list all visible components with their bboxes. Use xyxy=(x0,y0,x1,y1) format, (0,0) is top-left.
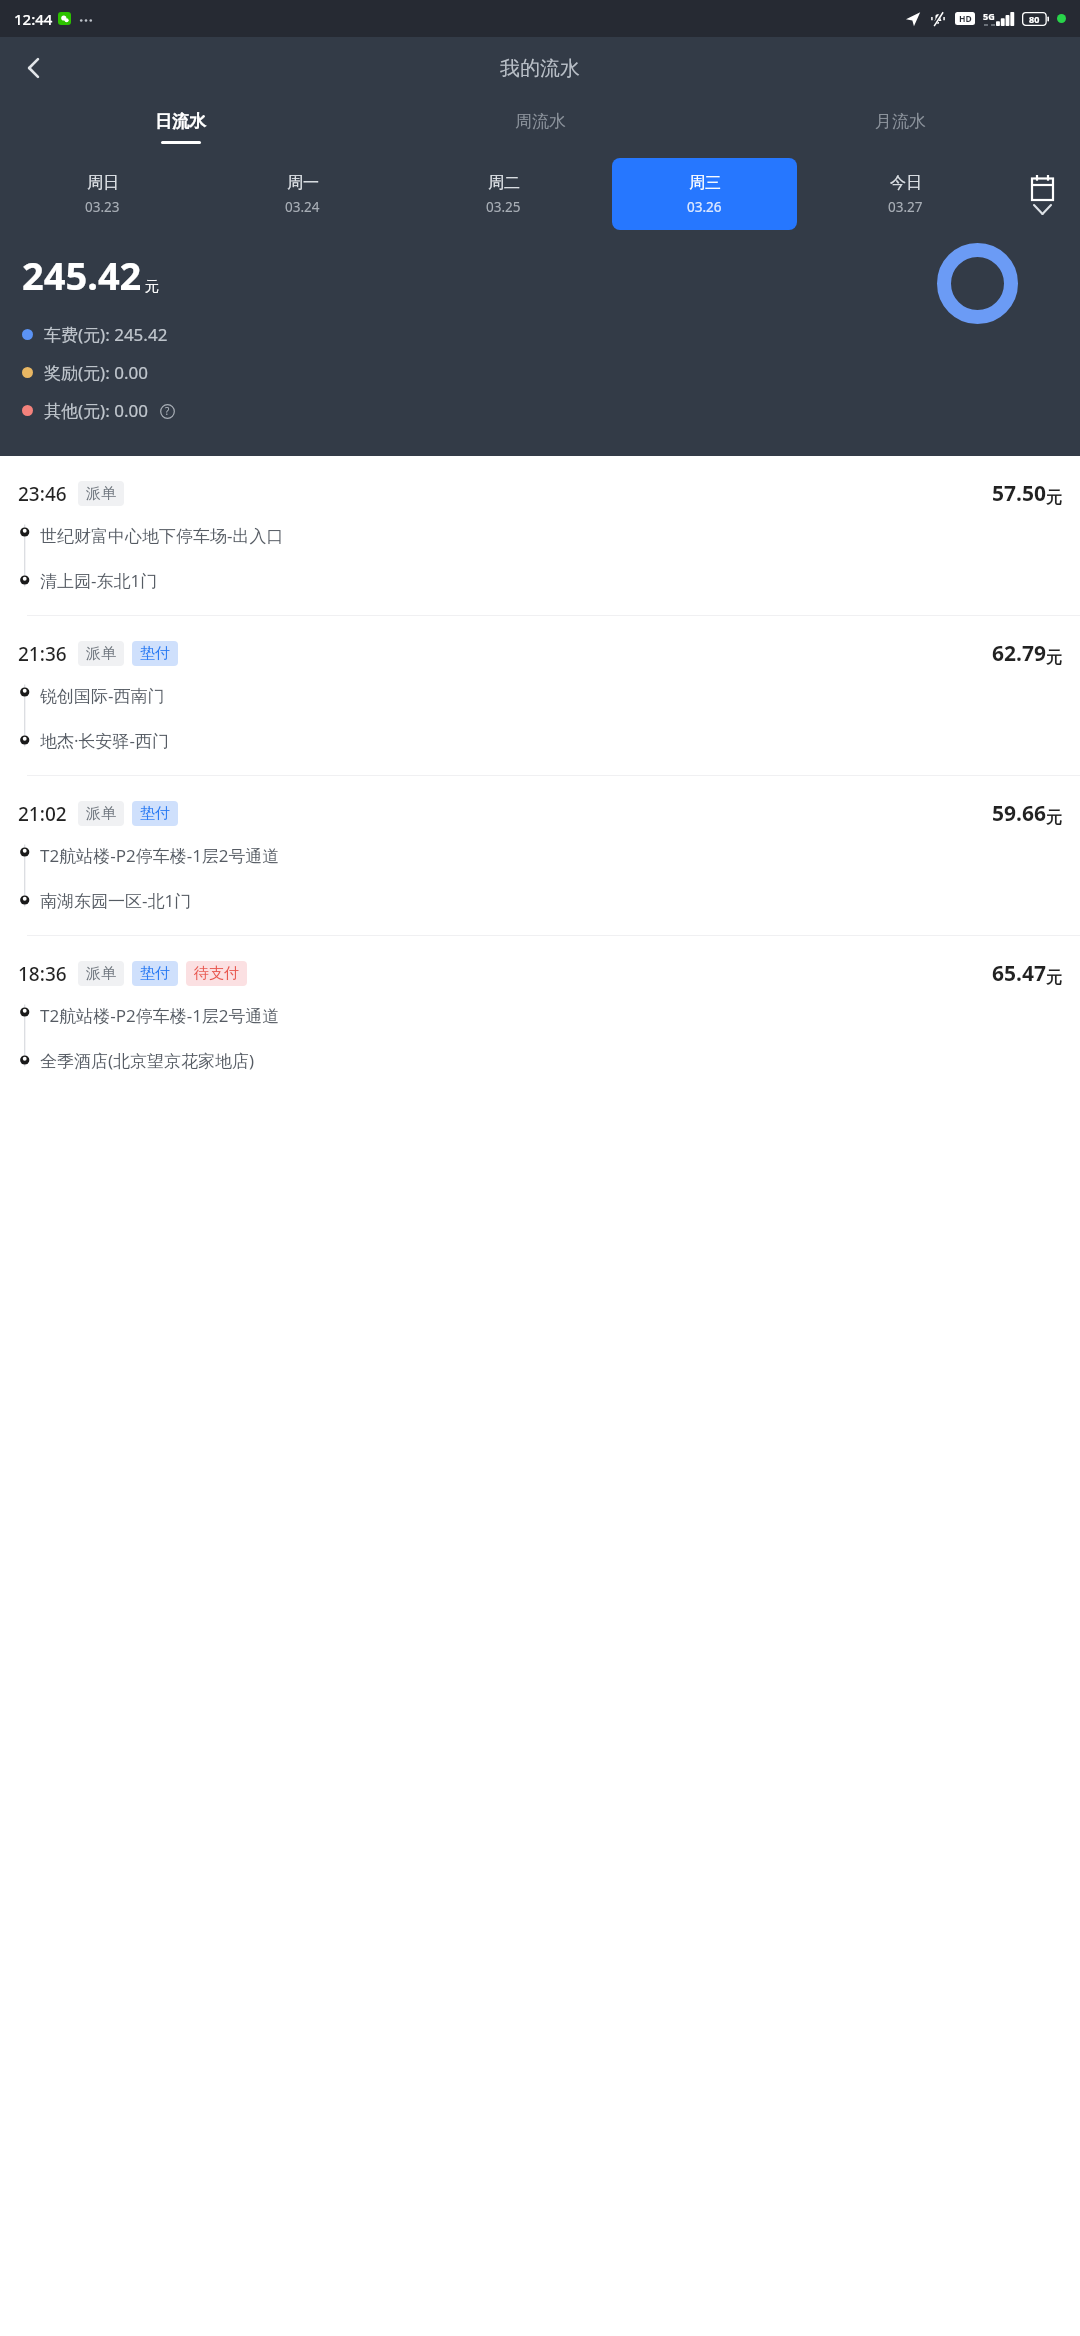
button[interactable]: 周一 xyxy=(210,158,395,230)
staticText: 其他(元): 0.00 xyxy=(44,399,148,422)
staticText: 周二 xyxy=(488,173,520,193)
staticText: 245.42 xyxy=(22,249,142,301)
button[interactable]: 周日 xyxy=(10,158,194,230)
button[interactable]: 周三 xyxy=(612,158,797,230)
button[interactable]: 垫付 xyxy=(140,644,170,663)
staticText: 80 xyxy=(1029,13,1040,25)
staticText: 周三 xyxy=(689,173,721,193)
staticText: 23:46 xyxy=(18,481,67,507)
staticText: 元 xyxy=(1046,488,1062,508)
staticText: 03.24 xyxy=(285,198,320,216)
staticText: 03.27 xyxy=(888,198,923,216)
staticText: 57.50 xyxy=(992,479,1046,508)
staticText: 12:44 xyxy=(14,9,53,29)
button[interactable]: 18:36 xyxy=(0,936,1080,1095)
staticText: 垫付 xyxy=(140,644,170,663)
button[interactable]: 月流水 xyxy=(720,99,1080,155)
staticText: HD xyxy=(959,13,972,25)
staticText: 元 xyxy=(1046,808,1062,828)
staticText: 奖励(元): 0.00 xyxy=(44,361,148,384)
staticText: T2航站楼-P2停车楼-1层2号通道 xyxy=(40,844,280,867)
button[interactable]: 派单 xyxy=(86,804,116,823)
staticText: 日流水 xyxy=(155,111,206,132)
button[interactable]: 待支付 xyxy=(194,964,239,983)
staticText: 18:36 xyxy=(18,961,67,987)
staticText: 世纪财富中心地下停车场-出入口 xyxy=(40,524,284,547)
staticText: ? xyxy=(165,404,170,418)
staticText: T2航站楼-P2停车楼-1层2号通道 xyxy=(40,1004,280,1027)
button[interactable]: 今日 xyxy=(813,158,998,230)
staticText: 月流水 xyxy=(875,111,926,132)
button[interactable]: Open calendar xyxy=(1006,155,1078,233)
button[interactable]: 派单 xyxy=(86,484,116,503)
staticText: 全季酒店(北京望京花家地店) xyxy=(40,1049,255,1072)
staticText: 派单 xyxy=(86,484,116,503)
staticText: 周流水 xyxy=(515,111,566,132)
staticText: 派单 xyxy=(86,804,116,823)
staticText: 5G xyxy=(983,10,995,22)
staticText: 62.79 xyxy=(992,639,1046,668)
staticText: 元 xyxy=(145,278,159,296)
button[interactable]: 21:02 xyxy=(0,776,1080,935)
staticText: 待支付 xyxy=(194,964,239,983)
staticText: 周一 xyxy=(287,173,319,193)
button[interactable]: 派单 xyxy=(86,964,116,983)
staticText: 元 xyxy=(1046,648,1062,668)
button[interactable]: 日流水 xyxy=(0,99,360,155)
staticText: 派单 xyxy=(86,964,116,983)
staticText: 03.25 xyxy=(486,198,521,216)
staticText: 21:36 xyxy=(18,641,67,667)
staticText: 我的流水 xyxy=(500,56,580,81)
button[interactable]: 21:36 xyxy=(0,616,1080,775)
button[interactable]: 周流水 xyxy=(360,99,720,155)
staticText: 元 xyxy=(1046,968,1062,988)
staticText: 65.47 xyxy=(992,959,1046,988)
button[interactable]: 派单 xyxy=(86,644,116,663)
staticText: 今日 xyxy=(890,173,922,193)
button[interactable]: 垫付 xyxy=(140,964,170,983)
staticText: 周日 xyxy=(87,173,119,193)
staticText: 垫付 xyxy=(140,964,170,983)
staticText: 锐创国际-西南门 xyxy=(40,684,165,707)
staticText: 派单 xyxy=(86,644,116,663)
staticText: 21:02 xyxy=(18,801,67,827)
button[interactable]: 23:46 xyxy=(0,456,1080,615)
staticText: 地杰·长安驿-西门 xyxy=(40,729,170,752)
staticText: 03.26 xyxy=(687,198,722,216)
button[interactable]: 垫付 xyxy=(140,804,170,823)
staticText: 车费(元): 245.42 xyxy=(44,323,168,346)
button[interactable]: Back xyxy=(10,44,58,92)
staticText: 垫付 xyxy=(140,804,170,823)
staticText: 南湖东园一区-北1门 xyxy=(40,889,192,912)
button[interactable]: Help xyxy=(157,401,177,421)
staticText: 03.23 xyxy=(85,198,120,216)
staticText: 59.66 xyxy=(992,799,1046,828)
button[interactable]: 周二 xyxy=(411,158,596,230)
staticText: 清上园-东北1门 xyxy=(40,569,158,592)
